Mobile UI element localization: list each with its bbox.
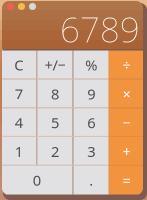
- button[interactable]: +: [109, 137, 144, 166]
- staticText: −: [122, 113, 130, 132]
- staticText: 6789: [60, 6, 140, 52]
- staticText: 8: [51, 84, 59, 103]
- staticText: =: [122, 170, 130, 190]
- staticText: ×: [122, 84, 130, 103]
- button[interactable]: 4: [1, 108, 36, 137]
- staticText: 0: [33, 170, 41, 190]
- button[interactable]: 0: [1, 166, 72, 194]
- staticText: ÷: [122, 55, 130, 75]
- button[interactable]: 6: [73, 108, 109, 137]
- button[interactable]: −: [109, 108, 144, 137]
- button[interactable]: C: [1, 50, 36, 79]
- staticText: 6: [87, 113, 95, 132]
- staticText: .: [89, 170, 93, 190]
- button[interactable]: +/−: [37, 50, 72, 79]
- staticText: 7: [15, 84, 23, 103]
- staticText: +/−: [44, 55, 65, 75]
- button[interactable]: .: [73, 166, 109, 194]
- button[interactable]: ÷: [109, 50, 144, 79]
- button[interactable]: 8: [37, 79, 72, 108]
- button[interactable]: 1: [1, 137, 36, 166]
- button[interactable]: 9: [73, 79, 109, 108]
- staticText: +: [122, 142, 130, 161]
- staticText: 9: [87, 84, 95, 103]
- staticText: 3: [87, 142, 95, 161]
- button[interactable]: ×: [109, 79, 144, 108]
- staticText: C: [14, 55, 23, 75]
- button[interactable]: 3: [73, 137, 109, 166]
- button[interactable]: =: [109, 166, 144, 194]
- staticText: 4: [15, 113, 23, 132]
- button[interactable]: %: [73, 50, 109, 79]
- staticText: 1: [15, 142, 23, 161]
- button[interactable]: 7: [1, 79, 36, 108]
- staticText: 5: [51, 113, 59, 132]
- staticText: 2: [51, 142, 59, 161]
- button[interactable]: 5: [37, 108, 72, 137]
- staticText: %: [85, 55, 97, 75]
- button[interactable]: 2: [37, 137, 72, 166]
